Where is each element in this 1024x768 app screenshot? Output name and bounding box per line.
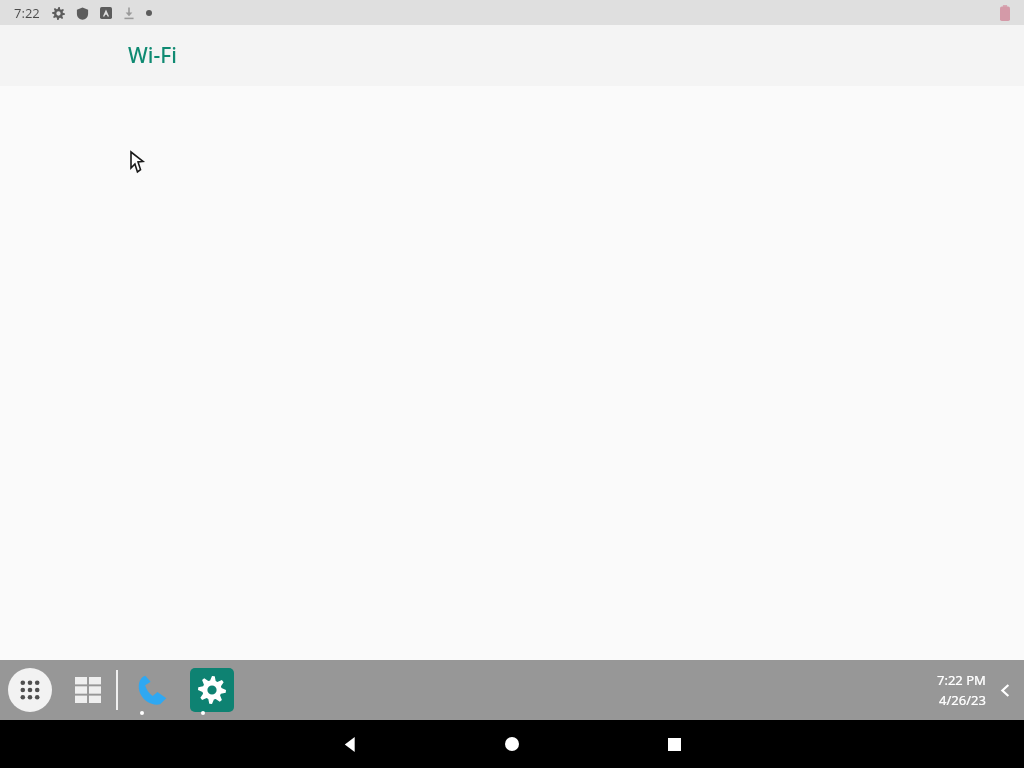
staticText: 7:22 PM bbox=[937, 671, 986, 689]
button[interactable]: Settings bbox=[190, 668, 234, 712]
button[interactable]: Back bbox=[330, 724, 370, 764]
button[interactable]: Phone bbox=[130, 668, 174, 712]
button[interactable]: 7:22 PM bbox=[937, 671, 986, 709]
staticText: 7:22 bbox=[14, 4, 40, 22]
staticText: Wi-Fi bbox=[128, 41, 177, 70]
button[interactable]: Home bbox=[492, 724, 532, 764]
button[interactable]: Recent apps bbox=[66, 668, 110, 712]
staticText: 4/26/23 bbox=[939, 691, 986, 709]
button[interactable]: Expand bbox=[992, 677, 1018, 703]
button[interactable]: Recent apps bbox=[654, 724, 694, 764]
button[interactable]: All apps bbox=[8, 668, 52, 712]
